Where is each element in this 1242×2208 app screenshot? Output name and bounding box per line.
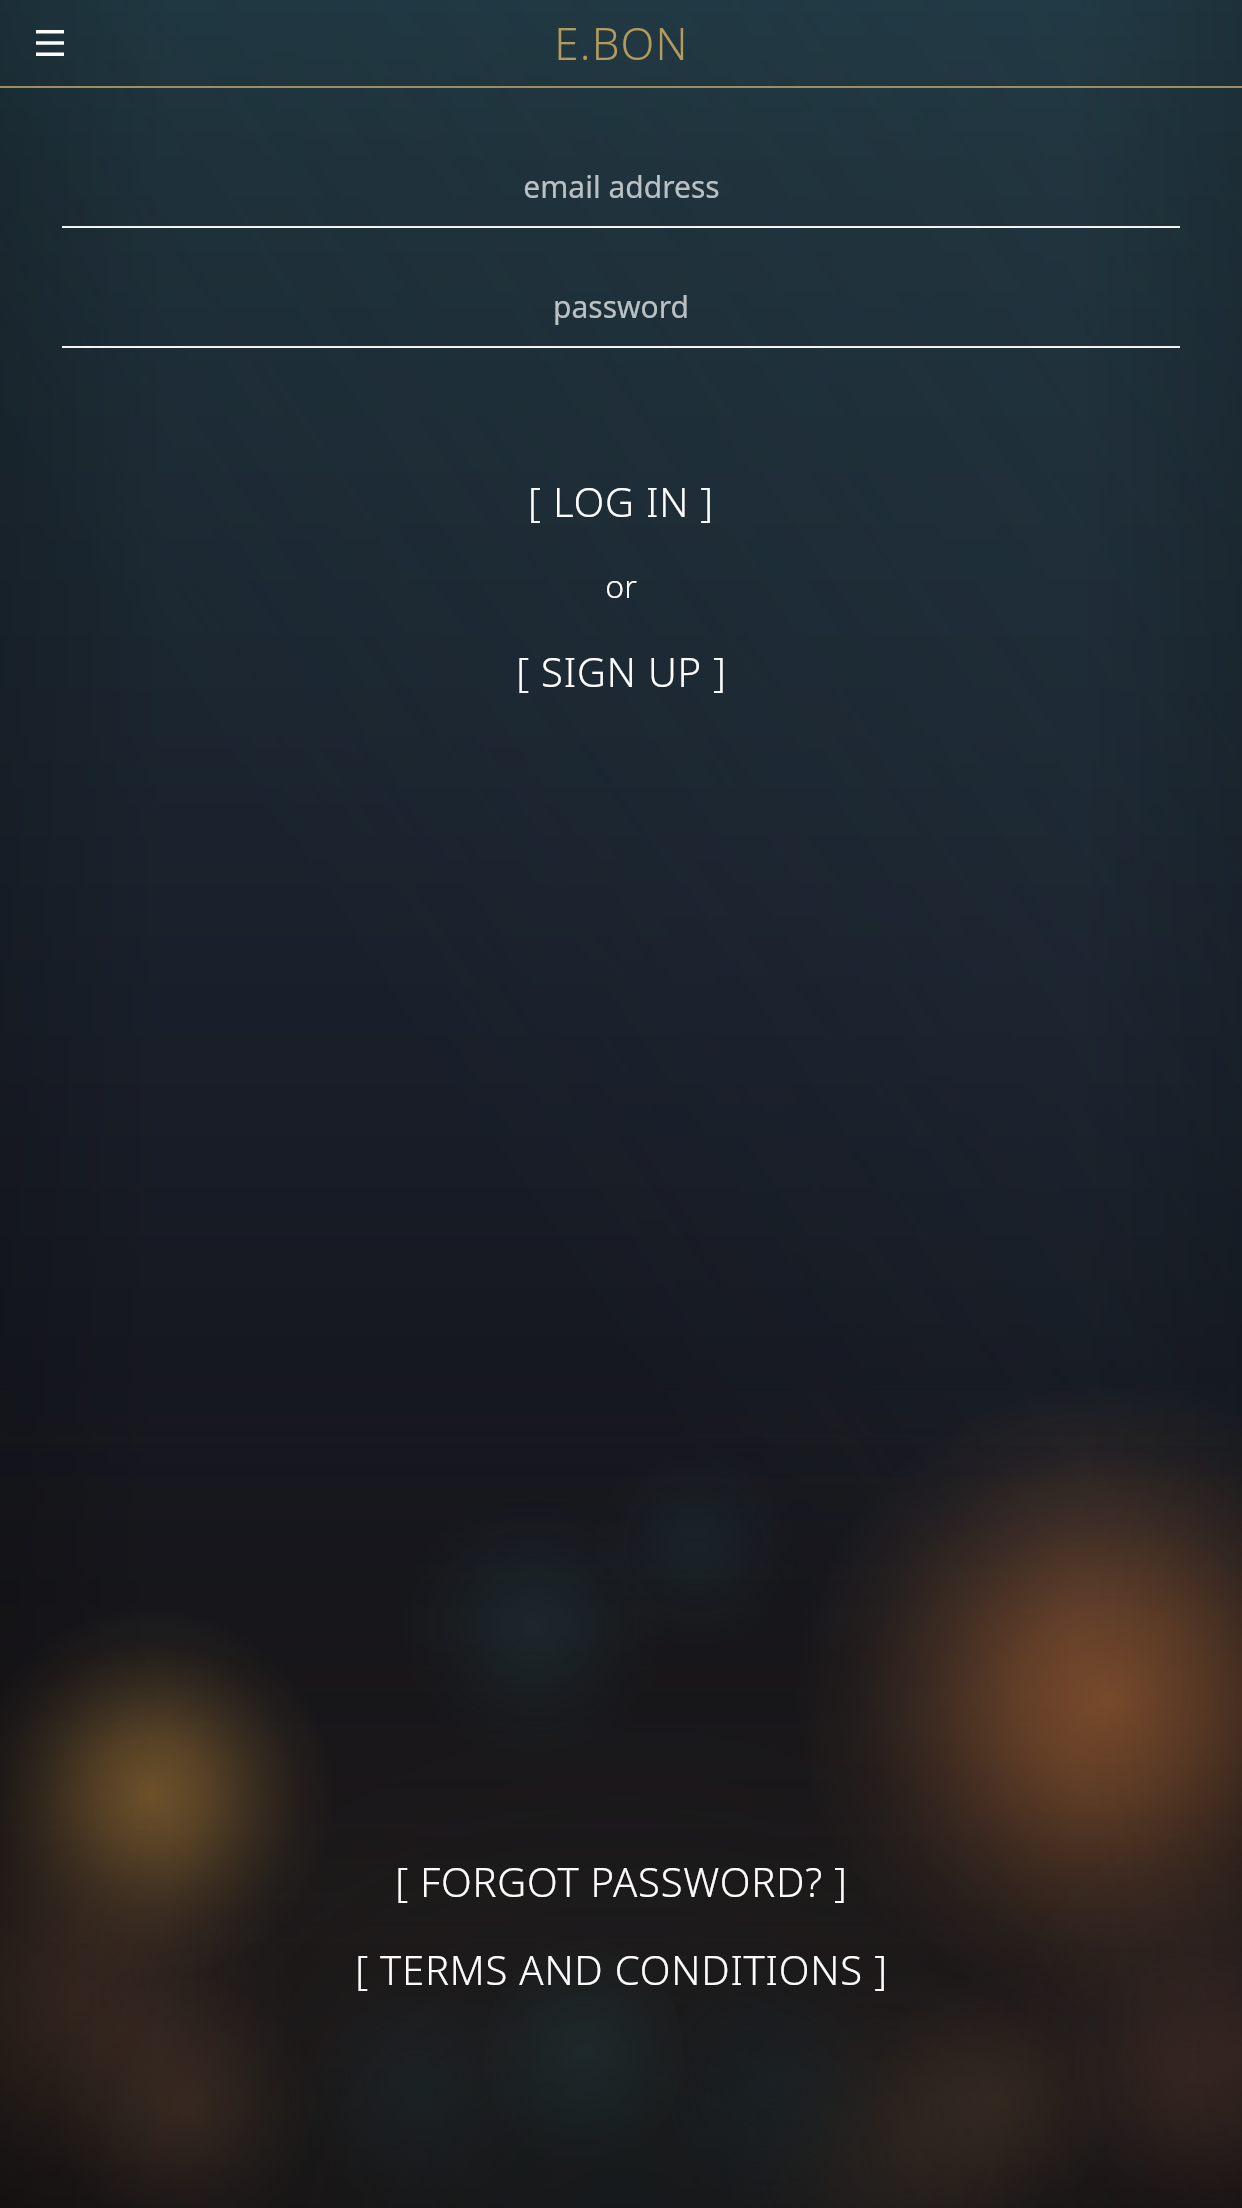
- button[interactable]: [ SIGN UP ]: [0, 640, 1242, 702]
- staticText: [ TERMS AND CONDITIONS ]: [355, 1942, 888, 1996]
- button[interactable]: [ TERMS AND CONDITIONS ]: [0, 1936, 1242, 2002]
- staticText: password: [553, 286, 689, 327]
- staticText: [ SIGN UP ]: [516, 644, 727, 698]
- button[interactable]: Email address field: [0, 160, 1242, 228]
- button[interactable]: [ FORGOT PASSWORD? ]: [0, 1848, 1242, 1914]
- staticText: or: [605, 564, 637, 608]
- staticText: [ FORGOT PASSWORD? ]: [395, 1854, 848, 1908]
- staticText: [ LOG IN ]: [528, 474, 714, 528]
- staticText: E.BON: [554, 13, 689, 73]
- button[interactable]: [ LOG IN ]: [0, 470, 1242, 532]
- button[interactable]: Password field: [0, 280, 1242, 348]
- staticText: email address: [523, 166, 720, 207]
- button[interactable]: Open navigation menu: [22, 15, 78, 71]
